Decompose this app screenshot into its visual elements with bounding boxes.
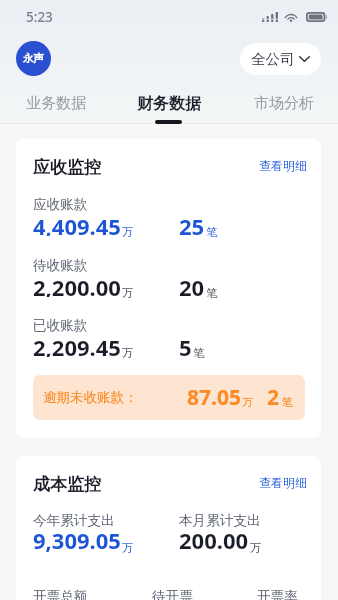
staticText: 笔 [206, 225, 218, 239]
button[interactable]: 业务数据 [0, 92, 112, 124]
staticText: 2,200.00 [33, 272, 121, 297]
staticText: 5 [179, 332, 192, 357]
staticText: 待收账款 [33, 257, 88, 274]
staticText: 笔 [282, 395, 293, 409]
staticText: 笔 [206, 286, 218, 300]
staticText: 2 [267, 383, 280, 412]
staticText: 万 [122, 225, 134, 239]
staticText: 万 [122, 541, 134, 555]
staticText: 永声 [23, 52, 44, 65]
staticText: 财务数据 [137, 94, 201, 114]
staticText: 市场分析 [254, 94, 314, 113]
staticText: 待开票 [152, 588, 193, 600]
button[interactable]: 查看明细 [257, 477, 305, 492]
staticText: 4,409.45 [33, 211, 121, 236]
staticText: 开票率 [257, 588, 298, 600]
staticText: 万 [242, 395, 253, 409]
staticText: 查看明细 [259, 475, 307, 490]
staticText: 5:23 [26, 8, 53, 26]
staticText: 业务数据 [26, 94, 86, 113]
staticText: 万 [250, 541, 262, 555]
staticText: 20 [179, 272, 205, 297]
staticText: 9,309.05 [33, 525, 121, 552]
staticText: 本月累计支出 [179, 512, 261, 529]
button[interactable]: 永声 Logo [16, 41, 51, 76]
button[interactable]: 市场分析 [227, 92, 338, 124]
button[interactable]: 财务数据 [112, 92, 225, 124]
staticText: 应收监控 [33, 157, 101, 178]
staticText: 全公司 [251, 50, 295, 68]
staticText: 查看明细 [259, 158, 307, 173]
staticText: 应收账款 [33, 196, 88, 213]
staticText: 已收账款 [33, 317, 88, 334]
staticText: 今年累计支出 [33, 512, 115, 529]
staticText: 万 [122, 346, 134, 360]
staticText: 200.00 [179, 525, 249, 552]
staticText: 25 [179, 211, 205, 236]
button[interactable]: 查看明细 [257, 160, 305, 175]
button[interactable]: 全公司 [240, 43, 321, 75]
staticText: 87.05 [187, 383, 241, 412]
staticText: 开票总额 [33, 588, 88, 600]
staticText: 万 [122, 286, 134, 300]
staticText: 笔 [193, 346, 205, 360]
staticText: 2,209.45 [33, 332, 121, 357]
button[interactable]: 逾期未收账款： [33, 375, 305, 420]
staticText: 逾期未收账款： [43, 389, 138, 406]
staticText: 成本监控 [33, 474, 101, 495]
